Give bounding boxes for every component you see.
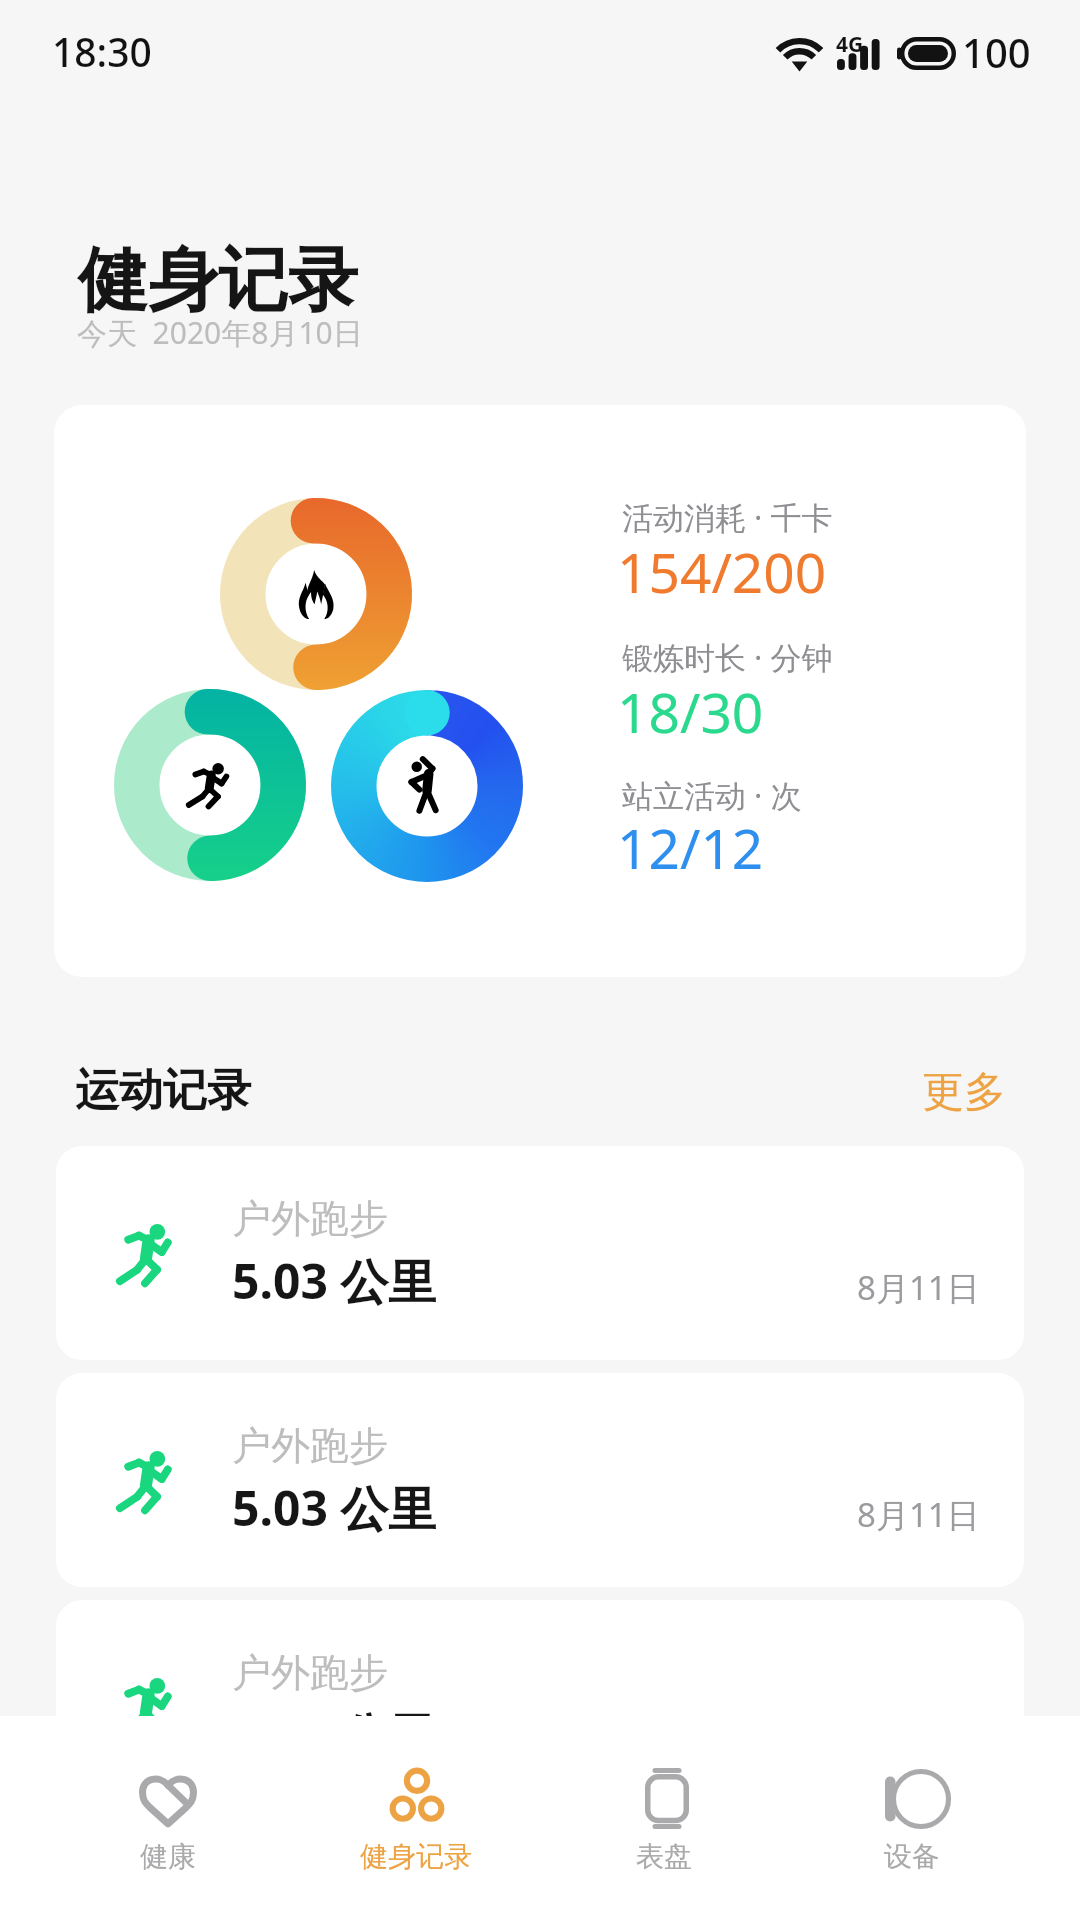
staticText: 站立活动 · 次 [622, 774, 802, 816]
button[interactable]: 健康 [44, 1716, 292, 1920]
button[interactable]: 表盘 [540, 1716, 788, 1920]
button[interactable]: 户外跑步 [56, 1373, 1024, 1587]
staticText: 健康 [140, 1839, 196, 1874]
staticText: 8月11日 [857, 1265, 980, 1310]
staticText: 154/200 [617, 534, 827, 609]
staticText: 18/30 [617, 674, 764, 749]
staticText: 健身记录 [360, 1839, 472, 1874]
button[interactable]: 户外跑步 [56, 1600, 1024, 1814]
button[interactable]: 户外跑步 [56, 1146, 1024, 1360]
button[interactable]: 今日活动三环：活动消耗、锻炼时长、站立活动 [54, 405, 1026, 977]
staticText: 表盘 [636, 1839, 692, 1874]
staticText: 锻炼时长 · 分钟 [622, 636, 833, 678]
button[interactable]: 更多 [904, 1056, 1024, 1128]
staticText: 健身记录 [78, 237, 358, 325]
staticText: 12/12 [617, 810, 764, 885]
staticText: 100 [962, 25, 1031, 79]
staticText: 设备 [884, 1839, 940, 1874]
staticText: 户外跑步 [232, 1194, 388, 1243]
button[interactable]: 健身记录 [292, 1716, 540, 1920]
staticText: 5.03 公里 [232, 1248, 437, 1314]
staticText: 18:30 [52, 25, 152, 78]
staticText: 活动消耗 · 千卡 [622, 496, 833, 538]
staticText: 更多 [922, 1066, 1006, 1119]
staticText: 5.03 公里 [232, 1702, 437, 1768]
staticText: 运动记录 [75, 1063, 251, 1118]
staticText: 今天 2020年8月10日 [77, 312, 363, 353]
staticText: 户外跑步 [232, 1648, 388, 1697]
button[interactable]: 设备 [788, 1716, 1036, 1920]
staticText: 5.03 公里 [232, 1475, 437, 1541]
staticText: 4G [836, 30, 864, 59]
staticText: 8月11日 [857, 1492, 980, 1537]
staticText: 户外跑步 [232, 1421, 388, 1470]
